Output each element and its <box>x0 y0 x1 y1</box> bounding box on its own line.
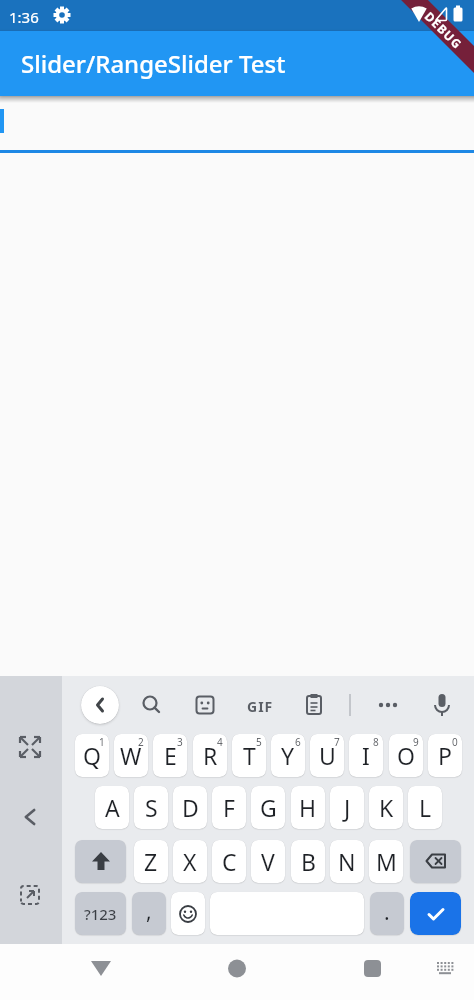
staticText: Z <box>144 846 158 877</box>
button[interactable]: V <box>251 840 285 883</box>
staticText: B <box>301 846 316 877</box>
button[interactable] <box>158 944 316 1000</box>
staticText: N <box>338 846 356 877</box>
staticText: 7 <box>334 735 340 749</box>
button[interactable]: ?123 <box>75 892 126 935</box>
staticText: , <box>146 897 152 926</box>
staticText: GIF <box>247 697 274 716</box>
staticText: V <box>261 846 275 877</box>
button[interactable]: P <box>428 734 462 777</box>
staticText: 5 <box>256 735 262 749</box>
button[interactable]: O <box>389 734 423 777</box>
button[interactable]: U <box>310 734 344 777</box>
staticText: I <box>362 740 370 771</box>
button[interactable] <box>410 840 461 883</box>
button[interactable]: B <box>291 840 325 883</box>
button[interactable] <box>171 892 205 935</box>
button[interactable]: S <box>134 786 168 829</box>
button[interactable] <box>0 944 158 1000</box>
button[interactable]: C <box>212 840 246 883</box>
button[interactable]: X <box>173 840 207 883</box>
staticText: E <box>164 740 177 771</box>
button[interactable] <box>81 686 119 724</box>
button[interactable]: D <box>173 786 207 829</box>
staticText: A <box>105 792 120 823</box>
button[interactable]: F <box>212 786 246 829</box>
staticText: H <box>299 792 317 823</box>
staticText: X <box>183 846 197 877</box>
staticText: W <box>120 740 142 771</box>
staticText: 1 <box>99 735 105 749</box>
staticText: M <box>376 846 397 877</box>
button[interactable] <box>316 944 474 1000</box>
staticText: . <box>384 898 390 927</box>
staticText: 1:36 <box>9 7 39 27</box>
staticText: Y <box>281 740 295 771</box>
button[interactable]: . <box>370 892 404 935</box>
staticText: Slider/RangeSlider Test <box>21 47 286 80</box>
button[interactable]: H <box>291 786 325 829</box>
button[interactable]: R <box>193 734 227 777</box>
button[interactable]: Z <box>134 840 168 883</box>
button[interactable]: Y <box>271 734 305 777</box>
staticText: T <box>243 740 256 771</box>
staticText: P <box>438 740 452 771</box>
button[interactable]: K <box>369 786 403 829</box>
staticText: 9 <box>413 735 419 749</box>
staticText: DEBUG <box>422 8 466 52</box>
button[interactable]: Slider/RangeSlider Test <box>0 31 474 96</box>
button[interactable] <box>75 840 126 883</box>
button[interactable]: L <box>408 786 442 829</box>
button[interactable]: T <box>232 734 266 777</box>
staticText: 4 <box>217 735 223 749</box>
button[interactable]: A <box>95 786 129 829</box>
staticText: L <box>419 792 432 823</box>
staticText: O <box>397 740 415 771</box>
staticText: 6 <box>295 735 301 749</box>
button[interactable]: M <box>369 840 403 883</box>
button[interactable] <box>410 892 461 935</box>
button[interactable]: J <box>330 786 364 829</box>
staticText: ?123 <box>84 904 117 924</box>
staticText: R <box>203 740 218 771</box>
staticText: U <box>319 740 336 771</box>
button[interactable]: I <box>349 734 383 777</box>
staticText: K <box>379 792 394 823</box>
staticText: 3 <box>177 735 183 749</box>
button[interactable]: E <box>153 734 187 777</box>
button[interactable]: W <box>114 734 148 777</box>
button[interactable]: N <box>330 840 364 883</box>
button[interactable]: , <box>132 892 166 935</box>
staticText: Q <box>83 740 101 771</box>
staticText: J <box>344 792 351 823</box>
staticText: D <box>182 792 199 823</box>
button[interactable]: Q <box>75 734 109 777</box>
staticText: 8 <box>373 735 379 749</box>
staticText: G <box>260 792 277 823</box>
button[interactable]: G <box>251 786 285 829</box>
staticText: 0 <box>452 735 458 749</box>
staticText: C <box>222 846 237 877</box>
staticText: 2 <box>138 735 144 749</box>
staticText: F <box>223 792 235 823</box>
staticText: S <box>145 792 158 823</box>
